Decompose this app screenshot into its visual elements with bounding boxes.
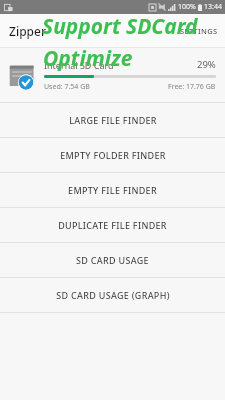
staticText: Free: 17.76 GB — [168, 82, 216, 92]
staticText: EMPTY FILE FINDER — [68, 184, 157, 196]
button[interactable]: DUPLICATE FILE FINDER — [0, 208, 225, 242]
staticText: DUPLICATE FILE FINDER — [58, 219, 167, 231]
button[interactable]: SD CARD USAGE — [0, 243, 225, 277]
staticText: LARGE FILE FINDER — [69, 114, 157, 126]
button[interactable]: SETTINGS — [174, 20, 225, 42]
button[interactable]: EMPTY FILE FINDER — [0, 173, 225, 207]
staticText: Support SDCard — [42, 12, 198, 41]
staticText: SETTINGS — [180, 26, 218, 36]
button[interactable]: SD CARD USAGE (GRAPH) — [0, 278, 225, 312]
staticText: SD CARD USAGE — [76, 254, 149, 266]
staticText: EMPTY FOLDER FINDER — [60, 149, 166, 161]
staticText: 13:44 — [204, 2, 222, 12]
staticText: Used: 7.54 GB — [44, 82, 168, 92]
button[interactable]: EMPTY FOLDER FINDER — [0, 138, 225, 172]
staticText: 29% — [197, 58, 216, 71]
button[interactable]: Internal SD Card — [0, 48, 225, 102]
button[interactable]: LARGE FILE FINDER — [0, 103, 225, 137]
button[interactable]: Zipper — [0, 19, 50, 43]
staticText: Zipper — [9, 23, 46, 39]
staticText: Internal SD Card — [44, 59, 197, 71]
staticText: Optimize — [43, 44, 133, 73]
staticText: 100% — [178, 2, 196, 12]
staticText: SD CARD USAGE (GRAPH) — [56, 289, 170, 301]
other: Internal SD Card — [8, 61, 37, 90]
